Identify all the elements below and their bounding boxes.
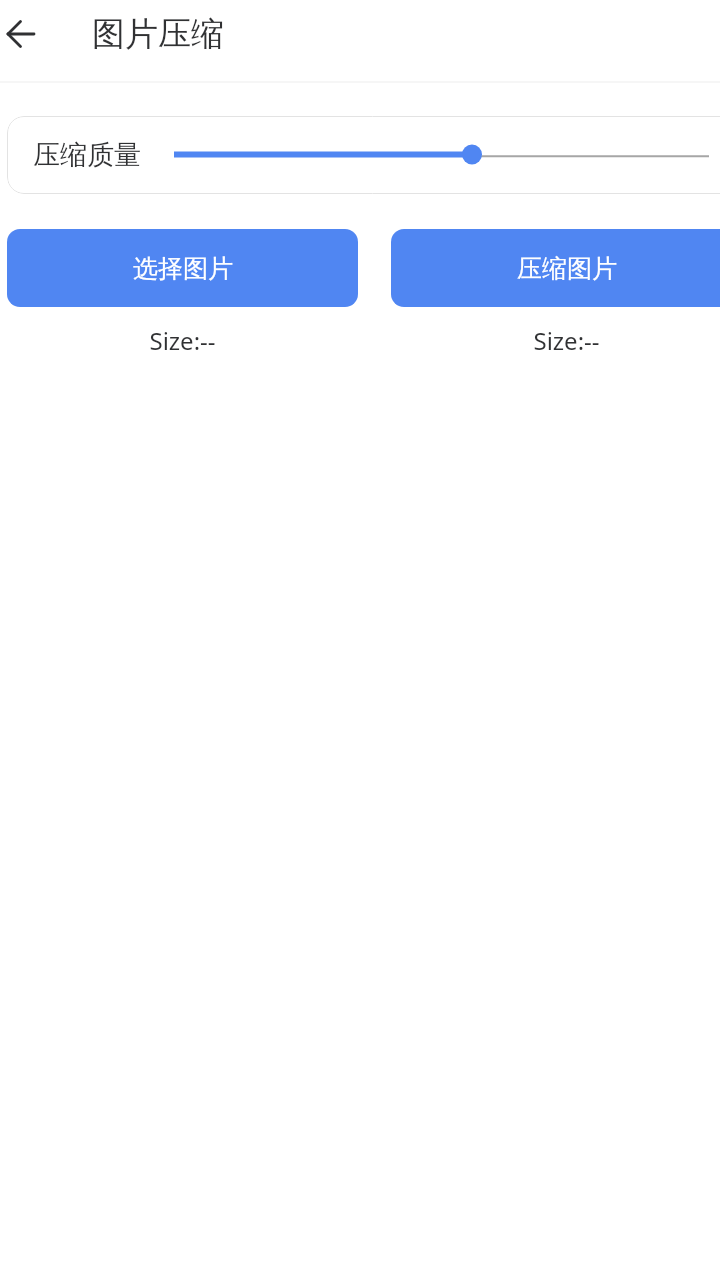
staticText: Size:-- [149, 324, 216, 357]
button[interactable]: 压缩图片 [391, 229, 720, 307]
staticText: 图片压缩 [92, 13, 224, 55]
staticText: Size:-- [533, 324, 600, 357]
staticText: 压缩质量 [33, 138, 141, 172]
button[interactable]: Compression quality slider [166, 135, 717, 175]
button[interactable]: Back [0, 10, 48, 58]
button[interactable]: 选择图片 [7, 229, 358, 307]
staticText: 压缩图片 [517, 253, 617, 284]
staticText: 选择图片 [133, 253, 233, 284]
